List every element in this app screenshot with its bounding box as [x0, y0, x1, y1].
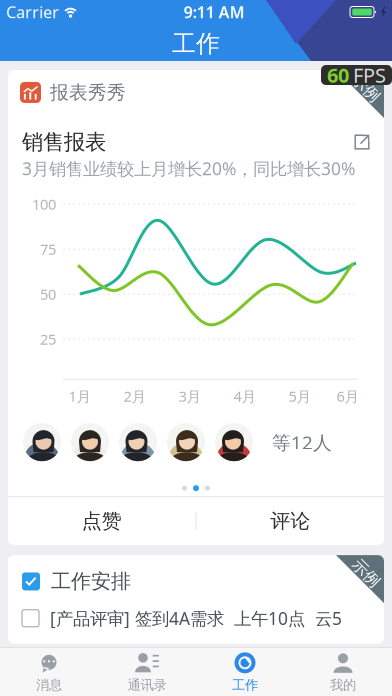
- staticText: 100: [32, 194, 56, 214]
- staticText: 评论: [270, 509, 310, 533]
- staticText: 1月: [68, 386, 91, 406]
- staticText: 5月: [288, 386, 311, 406]
- staticText: 我的: [330, 677, 356, 693]
- staticText: 3月: [178, 386, 201, 406]
- staticText: 2月: [123, 386, 146, 406]
- staticText: [产品评审] 签到4A需求 上午10点 云5: [50, 607, 342, 630]
- staticText: 示例: [350, 78, 382, 98]
- staticText: 25: [40, 329, 56, 349]
- staticText: 通讯录: [127, 677, 166, 693]
- staticText: 50: [40, 284, 56, 304]
- button[interactable]: 工作: [196, 648, 294, 696]
- staticText: 报表秀秀: [50, 81, 126, 104]
- staticText: 工作: [232, 677, 258, 693]
- staticText: 销售报表: [22, 129, 106, 155]
- staticText: 6月: [336, 386, 359, 406]
- staticText: Carrier: [6, 1, 59, 23]
- button[interactable]: 分享: [354, 134, 370, 150]
- staticText: FPS: [353, 62, 386, 88]
- staticText: 消息: [36, 677, 62, 693]
- staticText: 点赞: [82, 509, 122, 533]
- staticText: 工作安排: [51, 569, 131, 594]
- staticText: 75: [40, 239, 56, 259]
- button[interactable]: 我的: [294, 648, 392, 696]
- button[interactable]: 通讯录: [98, 648, 196, 696]
- staticText: 示例: [350, 563, 382, 583]
- staticText: 等12人: [272, 430, 332, 455]
- button[interactable]: 消息: [0, 648, 98, 696]
- staticText: 4月: [233, 386, 256, 406]
- staticText: 工作: [172, 29, 220, 58]
- button[interactable]: 点赞: [8, 497, 195, 545]
- staticText: 3月销售业绩较上月增长20%，同比增长30%: [22, 157, 355, 180]
- button[interactable]: 评论: [196, 497, 384, 545]
- staticText: 60: [327, 62, 349, 88]
- staticText: 9:11 AM: [183, 1, 244, 23]
